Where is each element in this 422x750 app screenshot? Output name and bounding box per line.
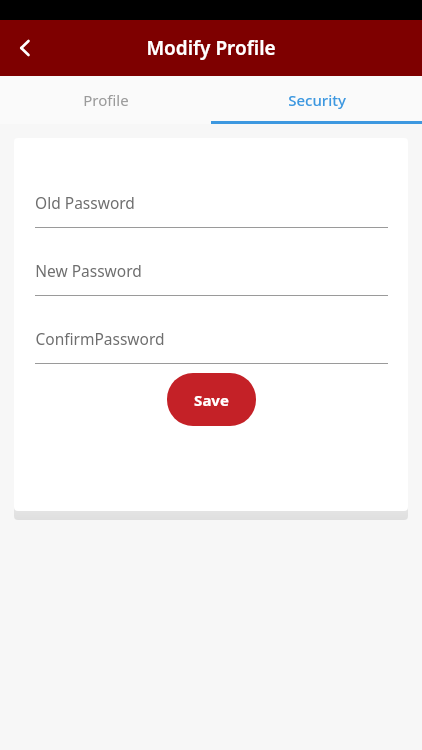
button[interactable]: Back [0, 23, 50, 73]
button[interactable]: ConfirmPassword [14, 328, 408, 364]
staticText: ConfirmPassword [35, 328, 165, 349]
staticText: New Password [35, 260, 142, 281]
staticText: Security [288, 90, 346, 110]
staticText: Modify Profile [146, 35, 276, 61]
staticText: Save [194, 390, 229, 410]
button[interactable]: Save [167, 373, 256, 426]
staticText: Old Password [35, 192, 135, 213]
button[interactable]: Profile [0, 76, 211, 124]
button[interactable]: New Password [14, 260, 408, 296]
button[interactable]: Security [211, 76, 422, 124]
button[interactable]: Old Password [14, 192, 408, 228]
staticText: Profile [83, 90, 129, 110]
